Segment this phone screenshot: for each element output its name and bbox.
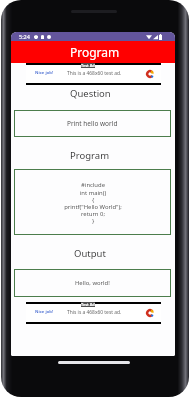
button[interactable]: Print hello world [14, 110, 171, 137]
staticText: #include int main() { printf("Hello Worl… [64, 181, 122, 224]
staticText: This is a 468x60 test ad. [67, 309, 122, 316]
button[interactable]: #include int main() { printf("Hello Worl… [14, 169, 171, 235]
staticText: This is a 468x60 test ad. [67, 70, 122, 77]
button[interactable]: Program [11, 41, 175, 63]
staticText: Program [70, 149, 110, 162]
other: Ad information [146, 70, 154, 78]
staticText: Program [70, 44, 120, 60]
staticText: Hello, world! [75, 279, 110, 287]
staticText: Nice job! [35, 309, 54, 315]
staticText: Output [74, 247, 106, 260]
staticText: Test Ad [81, 302, 95, 307]
staticText: Test Ad [81, 63, 95, 68]
staticText: Print hello world [67, 119, 118, 128]
button[interactable]: Hello, world! [14, 269, 171, 297]
button[interactable]: Nice job! [26, 63, 161, 85]
button[interactable]: Nice job! [26, 302, 161, 324]
staticText: Question [70, 87, 111, 100]
other: Ad information [146, 309, 154, 317]
staticText: 5:24 [19, 33, 30, 40]
staticText: Nice job! [35, 70, 54, 76]
